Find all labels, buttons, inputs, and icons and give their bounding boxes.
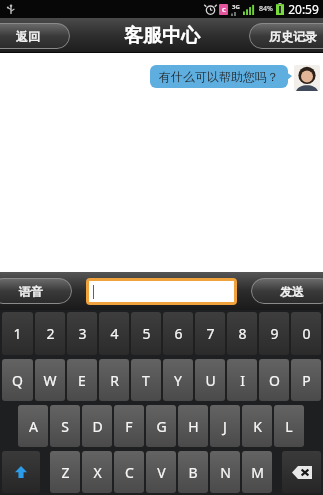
button[interactable]: V bbox=[146, 451, 176, 493]
button[interactable]: Q bbox=[2, 359, 33, 401]
staticText: S bbox=[61, 417, 69, 436]
staticText: X bbox=[93, 463, 102, 482]
staticText: C bbox=[222, 6, 226, 14]
button[interactable]: 8 bbox=[227, 312, 257, 355]
staticText: 0 bbox=[302, 324, 311, 343]
staticText: B bbox=[188, 463, 198, 482]
staticText: 返回 bbox=[16, 29, 40, 44]
button[interactable]: Y bbox=[163, 359, 193, 401]
button[interactable]: K bbox=[242, 405, 272, 447]
button[interactable]: 发送 bbox=[251, 278, 323, 304]
button[interactable]: 返回 bbox=[0, 23, 70, 49]
button[interactable] bbox=[89, 281, 234, 302]
button[interactable]: 历史记录 bbox=[249, 23, 323, 49]
button[interactable]: E bbox=[67, 359, 97, 401]
button[interactable]: L bbox=[274, 405, 304, 447]
button[interactable]: 5 bbox=[131, 312, 161, 355]
button[interactable]: T bbox=[131, 359, 161, 401]
staticText: 6 bbox=[174, 324, 183, 343]
staticText: O bbox=[269, 371, 280, 390]
staticText: J bbox=[223, 417, 227, 436]
staticText: T bbox=[142, 371, 150, 390]
button[interactable]: B bbox=[178, 451, 208, 493]
button[interactable]: S bbox=[50, 405, 80, 447]
button[interactable]: P bbox=[291, 359, 321, 401]
staticText: L bbox=[285, 417, 293, 436]
staticText: 5 bbox=[142, 324, 151, 343]
button[interactable]: J bbox=[210, 405, 240, 447]
staticText: 有什么可以帮助您吗？ bbox=[159, 69, 279, 84]
staticText: K bbox=[253, 417, 262, 436]
staticText: 2 bbox=[46, 324, 55, 343]
staticText: 8 bbox=[238, 324, 247, 343]
staticText: C bbox=[125, 463, 134, 482]
staticText: Y bbox=[174, 371, 182, 390]
staticText: 历史记录 bbox=[269, 29, 317, 44]
button[interactable]: R bbox=[99, 359, 129, 401]
button[interactable]: D bbox=[82, 405, 112, 447]
button[interactable]: F bbox=[114, 405, 144, 447]
button[interactable]: 语音 bbox=[0, 278, 72, 304]
staticText: U bbox=[205, 371, 216, 390]
staticText: D bbox=[92, 417, 103, 436]
button[interactable]: H bbox=[178, 405, 208, 447]
staticText: P bbox=[302, 371, 311, 390]
staticText: R bbox=[110, 371, 119, 390]
button[interactable]: Shift bbox=[2, 451, 40, 493]
staticText: 3 bbox=[78, 324, 87, 343]
button[interactable]: M bbox=[242, 451, 272, 493]
staticText: A bbox=[29, 417, 38, 436]
staticText: F bbox=[125, 417, 133, 436]
button[interactable]: 0 bbox=[291, 312, 321, 355]
staticText: 9 bbox=[270, 324, 279, 343]
button[interactable]: N bbox=[210, 451, 240, 493]
button[interactable]: 4 bbox=[99, 312, 129, 355]
staticText: Q bbox=[12, 371, 23, 390]
button[interactable]: I bbox=[227, 359, 257, 401]
staticText: 4 bbox=[110, 324, 119, 343]
button[interactable]: X bbox=[82, 451, 112, 493]
button[interactable]: Backspace bbox=[282, 451, 321, 493]
staticText: 1 bbox=[13, 324, 22, 343]
staticText: I bbox=[240, 371, 245, 390]
button[interactable]: O bbox=[259, 359, 289, 401]
staticText: 84% bbox=[259, 4, 273, 14]
staticText: 语音 bbox=[19, 284, 43, 299]
button[interactable]: U bbox=[195, 359, 225, 401]
staticText: V bbox=[157, 463, 166, 482]
button[interactable]: C bbox=[114, 451, 144, 493]
staticText: M bbox=[251, 463, 264, 482]
button[interactable]: 7 bbox=[195, 312, 225, 355]
staticText: 20:59 bbox=[288, 1, 319, 17]
button[interactable]: 3 bbox=[67, 312, 97, 355]
staticText: N bbox=[220, 463, 231, 482]
button[interactable]: Z bbox=[50, 451, 80, 493]
staticText: G bbox=[156, 417, 167, 436]
staticText: W bbox=[43, 371, 57, 390]
button[interactable]: 1 bbox=[2, 312, 33, 355]
staticText: H bbox=[188, 417, 199, 436]
staticText: 客服中心 bbox=[124, 24, 200, 48]
staticText: 7 bbox=[206, 324, 215, 343]
button[interactable]: 6 bbox=[163, 312, 193, 355]
staticText: E bbox=[78, 371, 86, 390]
staticText: 3G bbox=[232, 3, 240, 11]
button[interactable]: G bbox=[146, 405, 176, 447]
staticText: Z bbox=[61, 463, 70, 482]
button[interactable]: 9 bbox=[259, 312, 289, 355]
button[interactable]: 2 bbox=[35, 312, 65, 355]
staticText: 发送 bbox=[280, 284, 304, 299]
button[interactable]: A bbox=[18, 405, 48, 447]
button[interactable]: W bbox=[35, 359, 65, 401]
